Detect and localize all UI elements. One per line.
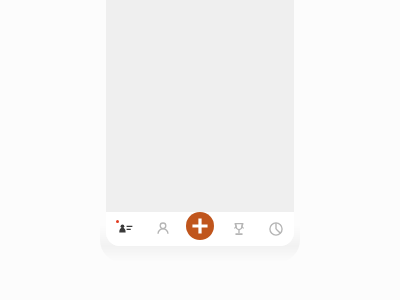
button[interactable]: Contacts: [106, 212, 144, 246]
button[interactable]: People: [144, 212, 182, 246]
button[interactable]: Awards: [220, 212, 258, 246]
button[interactable]: Statistics: [258, 212, 294, 246]
button[interactable]: Add: [186, 212, 214, 240]
